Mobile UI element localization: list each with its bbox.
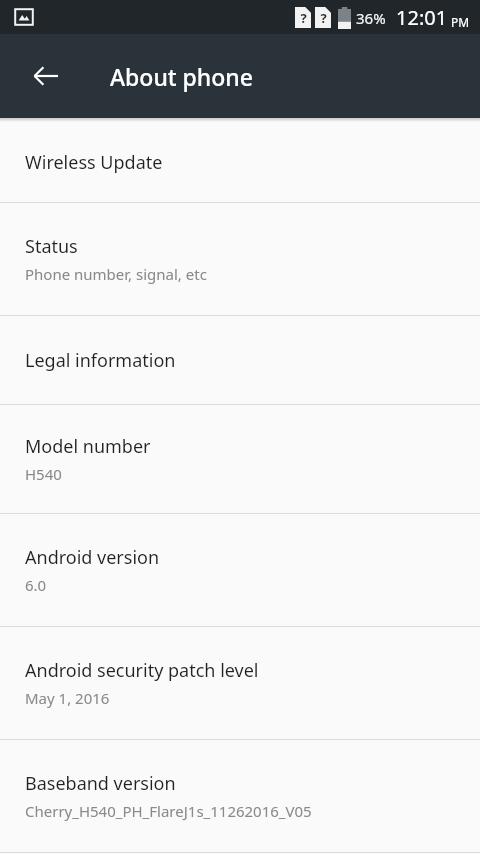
button[interactable]: Android version (0, 514, 480, 626)
button[interactable]: Legal information (0, 316, 480, 404)
staticText: May 1, 2016 (25, 688, 110, 708)
staticText: About phone (110, 61, 253, 92)
staticText: Model number (25, 434, 151, 459)
staticText: Phone number, signal, etc (25, 264, 207, 284)
staticText: Baseband version (25, 771, 176, 796)
staticText: Android security patch level (25, 658, 259, 683)
staticText: H540 (25, 464, 62, 484)
button[interactable]: Status (0, 203, 480, 315)
staticText: Wireless Update (25, 150, 163, 175)
button[interactable]: Navigate up (22, 52, 70, 100)
staticText: 36% (356, 8, 386, 28)
other: Screenshot captured (14, 7, 34, 27)
staticText: PM (451, 14, 470, 30)
staticText: ? (320, 9, 327, 27)
staticText: Cherry_H540_PH_FlareJ1s_11262016_V05 (25, 801, 312, 821)
button[interactable]: Baseband version (0, 740, 480, 852)
button[interactable]: Android security patch level (0, 627, 480, 739)
staticText: Status (25, 234, 78, 259)
staticText: 12:01 (396, 4, 448, 31)
staticText: Legal information (25, 348, 176, 373)
staticText: ? (300, 9, 307, 27)
staticText: Android version (25, 545, 160, 570)
button[interactable]: Wireless Update (0, 122, 480, 202)
staticText: 6.0 (25, 575, 47, 595)
button[interactable]: Model number (0, 405, 480, 513)
